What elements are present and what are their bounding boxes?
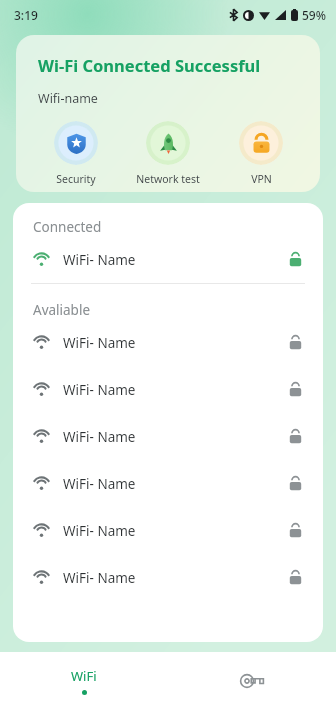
staticText: WiFi- Name [63,569,136,587]
staticText: Connected [33,218,102,236]
button[interactable]: WiFi- Name [13,413,323,460]
staticText: WiFi- Name [63,475,136,493]
button[interactable]: WiFi- Name [13,460,323,507]
button[interactable]: VPN [218,119,304,188]
button[interactable]: WiFi- Name [13,507,323,554]
staticText: Security [56,172,96,186]
staticText: 3:19 [14,7,38,23]
staticText: WiFi [71,667,97,685]
button[interactable]: Security [33,119,119,188]
staticText: WiFi- Name [63,251,136,269]
staticText: WiFi- Name [63,428,136,446]
button[interactable]: WiFi [0,652,168,710]
button[interactable]: Passwords [168,652,336,710]
staticText: Wifi-name [38,90,98,107]
staticText: 59% [302,7,326,23]
staticText: Wi-Fi Connected Successful [38,54,261,76]
staticText: WiFi- Name [63,334,136,352]
staticText: WiFi- Name [63,522,136,540]
staticText: Avaliable [33,301,90,319]
button[interactable]: WiFi- Name [13,554,323,601]
button[interactable]: WiFi- Name [13,319,323,366]
button[interactable]: WiFi- Name [13,236,323,283]
staticText: WiFi- Name [63,381,136,399]
staticText: VPN [251,172,272,186]
button[interactable]: Network test [125,119,211,188]
staticText: Network test [136,172,200,186]
button[interactable]: WiFi- Name [13,366,323,413]
